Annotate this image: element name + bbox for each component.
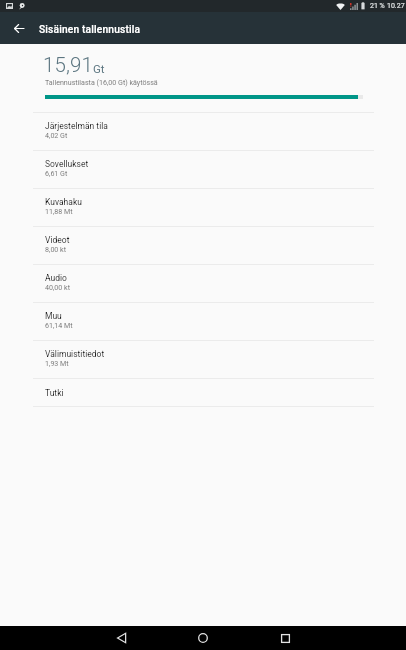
staticText: 10.27 [387,2,405,10]
staticText: Välimuistitiedot [45,349,105,359]
staticText: Sovellukset [45,159,89,169]
button[interactable]: Recent apps [265,626,305,650]
staticText: Gt [93,62,105,75]
button[interactable]: Tutki [0,378,406,407]
staticText: 61,14 Mt [45,321,73,329]
staticText: Kuvahaku [45,197,82,207]
button[interactable]: Muu [0,302,406,340]
staticText: 21 % [370,2,385,10]
staticText: Videot [45,235,70,245]
staticText: 4,02 Gt [45,131,68,139]
button[interactable]: Kuvahaku [0,188,406,226]
staticText: Muu [45,311,62,321]
staticText: Audio [45,273,67,283]
button[interactable]: Järjestelmän tila [0,112,406,150]
button[interactable]: Back [0,12,36,44]
staticText: 40,00 kt [45,283,71,291]
staticText: Tallennustilasta (16,00 Gt) käytössä [45,78,158,86]
button[interactable]: Audio [0,264,406,302]
staticText: 1,93 Mt [45,359,69,367]
button[interactable]: Back [101,626,141,650]
staticText: 6,61 Gt [45,169,68,177]
staticText: 15,91 [43,53,93,77]
button[interactable]: Välimuistitiedot [0,340,406,378]
button[interactable]: Home [183,626,223,650]
staticText: Järjestelmän tila [45,121,108,131]
button[interactable]: Videot [0,226,406,264]
staticText: Sisäinen tallennustila [39,24,141,36]
staticText: 11,88 Mt [45,207,73,215]
staticText: 8,00 kt [45,245,67,253]
staticText: Tutki [45,388,64,398]
button[interactable]: Sovellukset [0,150,406,188]
